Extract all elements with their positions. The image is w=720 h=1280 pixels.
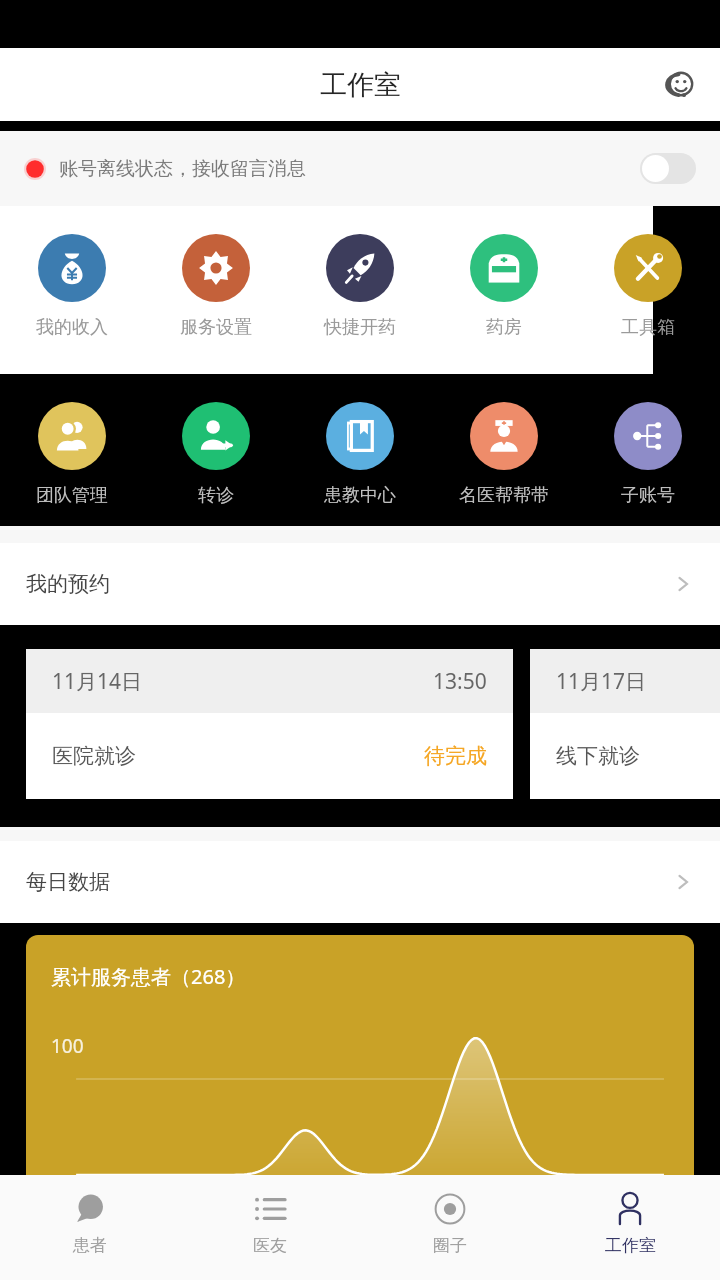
button[interactable]: 累计服务患者（268） [26, 935, 694, 1175]
button[interactable]: Customer service [658, 61, 706, 109]
button[interactable]: 团队管理 [0, 374, 144, 526]
staticText: 子账号 [621, 484, 675, 507]
staticText: 工作室 [605, 1235, 656, 1256]
staticText: 工作室 [320, 68, 401, 102]
staticText: 药房 [486, 316, 522, 339]
button[interactable]: 工具箱 [576, 206, 720, 374]
button[interactable]: 药房 [432, 206, 576, 374]
button[interactable]: 患者 [0, 1175, 180, 1280]
button[interactable]: 服务设置 [144, 206, 288, 374]
staticText: 圈子 [433, 1235, 467, 1256]
staticText: 转诊 [198, 484, 234, 507]
staticText: 每日数据 [26, 869, 110, 895]
staticText: 患者 [73, 1235, 107, 1256]
button[interactable]: 每日数据 [0, 841, 720, 923]
staticText: 快捷开药 [324, 316, 396, 339]
staticText: 团队管理 [36, 484, 108, 507]
button[interactable]: 转诊 [144, 374, 288, 526]
button[interactable]: 账号离线状态，接收留言消息 [0, 131, 720, 206]
staticText: 待完成 [424, 743, 487, 769]
staticText: 线下就诊 [556, 743, 640, 769]
staticText: 医院就诊 [52, 743, 136, 769]
staticText: 我的预约 [26, 571, 110, 597]
button[interactable]: 工作室 [540, 1175, 720, 1280]
staticText: 工具箱 [621, 316, 675, 339]
button[interactable]: 我的收入 [0, 206, 144, 374]
staticText: 名医帮帮带 [459, 484, 549, 507]
staticText: 医友 [253, 1235, 287, 1256]
button[interactable]: 医友 [180, 1175, 360, 1280]
button[interactable]: 圈子 [360, 1175, 540, 1280]
staticText: 账号离线状态，接收留言消息 [59, 157, 306, 181]
button[interactable]: 我的预约 [0, 543, 720, 625]
button[interactable]: Online toggle [640, 153, 696, 184]
staticText: 患教中心 [324, 484, 396, 507]
staticText: 13:50 [433, 667, 487, 696]
staticText: 11月14日 [52, 667, 143, 696]
button[interactable]: 子账号 [576, 374, 720, 526]
staticText: 100 [51, 1033, 84, 1059]
button[interactable]: 名医帮帮带 [432, 374, 576, 526]
staticText: 11月17日 [556, 667, 647, 696]
staticText: 累计服务患者（268） [51, 963, 246, 990]
staticText: 我的收入 [36, 316, 108, 339]
button[interactable]: 11月17日 [530, 649, 720, 799]
button[interactable]: 11月14日 [26, 649, 513, 799]
button[interactable]: 快捷开药 [288, 206, 432, 374]
staticText: 服务设置 [180, 316, 252, 339]
button[interactable]: 患教中心 [288, 374, 432, 526]
